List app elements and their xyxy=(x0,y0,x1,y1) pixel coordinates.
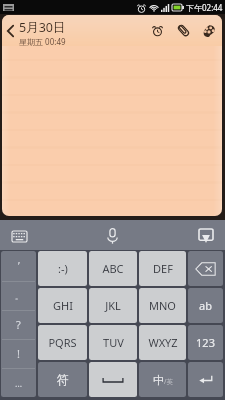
staticText: GHI xyxy=(53,298,73,313)
button[interactable]: PQRS xyxy=(38,325,87,360)
button[interactable]: Hide keyboard xyxy=(187,220,225,250)
button[interactable]: 中 xyxy=(139,362,186,397)
staticText: 5月30日 xyxy=(19,19,66,36)
staticText: 。 xyxy=(15,291,23,301)
staticText: TUV xyxy=(103,335,124,350)
button[interactable]: GHI xyxy=(38,288,87,323)
button[interactable]: Theme xyxy=(196,15,222,46)
button[interactable]: ’ xyxy=(1,251,36,281)
staticText: WXYZ xyxy=(148,335,178,350)
button[interactable] xyxy=(188,251,223,286)
staticText: 星期五 00:49 xyxy=(19,36,66,47)
button[interactable]: 。 xyxy=(1,281,36,310)
button[interactable]: … xyxy=(1,368,36,397)
staticText: ’ xyxy=(18,259,20,273)
button[interactable]: Reminder xyxy=(144,15,170,46)
staticText: JKL xyxy=(105,298,121,313)
staticText: DEF xyxy=(153,261,173,276)
button[interactable]: JKL xyxy=(89,288,137,323)
button[interactable]: DEF xyxy=(139,251,186,286)
button[interactable]: MNO xyxy=(139,288,186,323)
button[interactable] xyxy=(188,362,223,397)
staticText: ? xyxy=(16,317,21,332)
button[interactable]: ABC xyxy=(89,251,137,286)
button[interactable]: Back xyxy=(2,15,19,46)
button[interactable]: 符 xyxy=(38,362,87,397)
button[interactable]: ab xyxy=(188,288,223,323)
button[interactable] xyxy=(89,362,137,397)
staticText: 下午02:44 xyxy=(186,2,223,13)
button[interactable] xyxy=(2,46,222,216)
staticText: :-) xyxy=(58,261,68,276)
button[interactable]: TUV xyxy=(89,325,137,360)
staticText: /英 xyxy=(164,377,173,386)
button[interactable]: Attach xyxy=(170,15,196,46)
staticText: 123 xyxy=(196,335,215,350)
staticText: 符 xyxy=(57,372,69,387)
button[interactable]: ! xyxy=(1,339,36,368)
staticText: 中 xyxy=(153,373,164,387)
button[interactable]: Switch keyboard xyxy=(0,220,38,250)
button[interactable]: WXYZ xyxy=(139,325,186,360)
staticText: PQRS xyxy=(48,335,77,350)
button[interactable]: ? xyxy=(1,310,36,339)
staticText: ABC xyxy=(102,261,124,276)
button[interactable]: :-) xyxy=(38,251,87,286)
staticText: ab xyxy=(199,298,212,313)
staticText: ! xyxy=(17,346,20,361)
staticText: MNO xyxy=(149,298,176,313)
button[interactable]: Voice input xyxy=(92,220,132,250)
button[interactable]: 123 xyxy=(188,325,223,360)
staticText: … xyxy=(15,377,23,389)
